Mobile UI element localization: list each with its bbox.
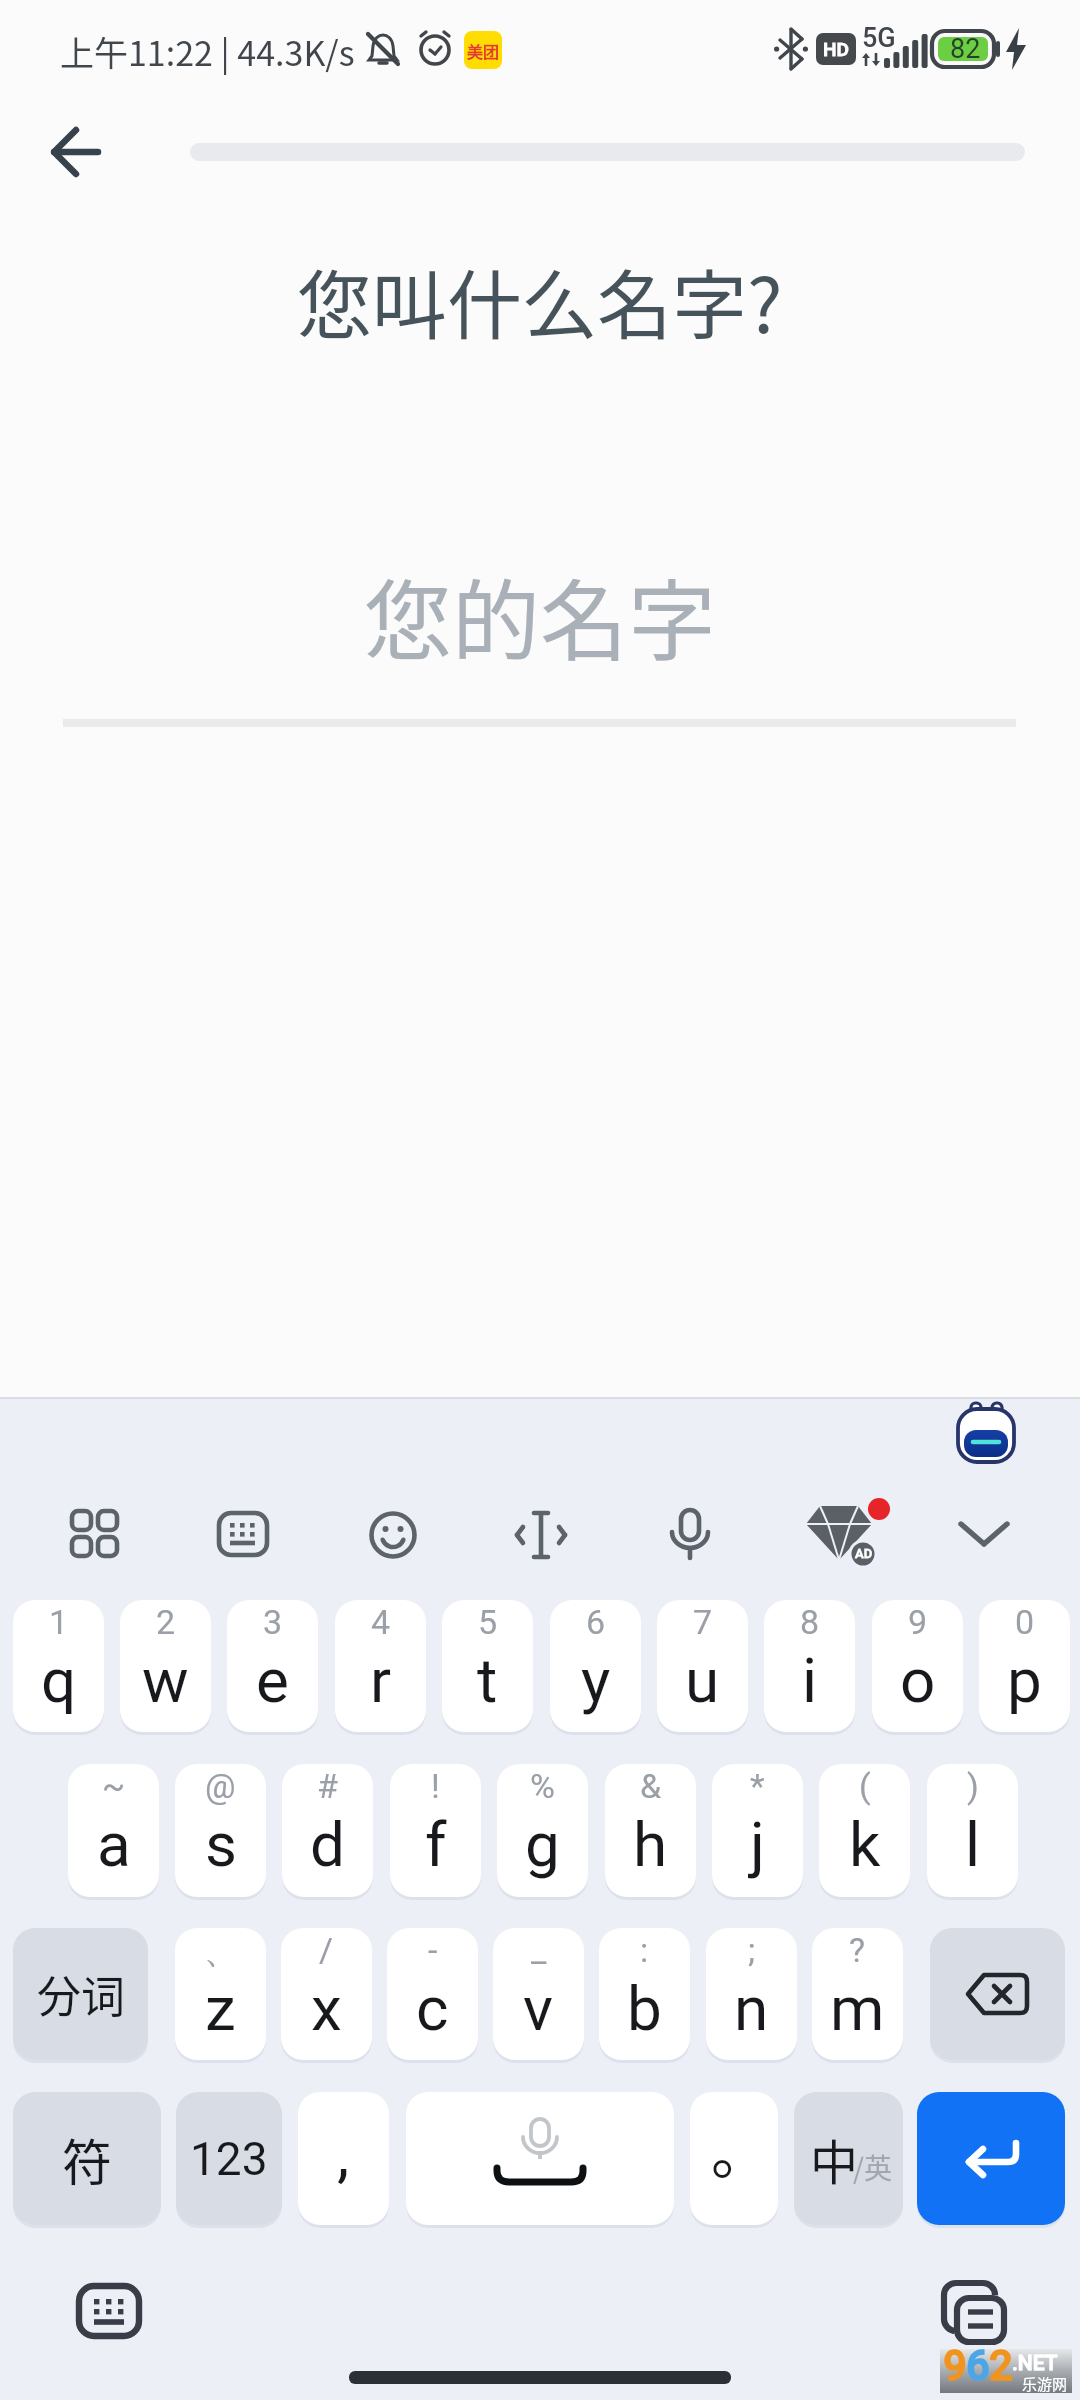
staticText: 2 [989,2341,1013,2385]
button[interactable]: 8 [764,1600,855,1732]
staticText: 9 [943,2341,967,2385]
button[interactable]: _ [493,1928,584,2060]
staticText: 。 [711,2107,770,2191]
button[interactable]: 5 [442,1600,533,1732]
button[interactable]: ; [706,1928,797,2060]
staticText: 2 [156,1602,176,1642]
button[interactable] [955,1401,1017,1463]
staticText: b [627,1972,662,2045]
staticText: m [830,1972,885,2045]
staticText: /英 [853,2147,892,2188]
staticText: 分词 [37,1962,125,2026]
button[interactable]: 。 [690,2092,778,2225]
button[interactable]: / [281,1928,372,2060]
staticText: / [319,1930,334,1970]
button[interactable]: @ [175,1764,266,1897]
staticText: 上午11:22 | 44.3K/s [60,27,355,76]
staticText: l [965,1808,981,1881]
button[interactable]: 6 [550,1600,641,1732]
button[interactable]: 4 [335,1600,426,1732]
button[interactable]: 中 [794,2092,903,2225]
staticText: 6 [966,2341,990,2385]
button[interactable] [77,2284,141,2338]
button[interactable] [941,2280,1007,2344]
button[interactable]: & [605,1764,696,1897]
button[interactable]: ! [390,1764,481,1897]
button[interactable]: 3 [227,1600,318,1732]
staticText: s [205,1808,237,1881]
button[interactable]: , [298,2092,389,2225]
staticText: HD [823,38,849,60]
button[interactable] [958,1518,1010,1550]
staticText: 乐游网 [1022,2373,1068,2395]
button[interactable]: : [599,1928,690,2060]
button[interactable]: ) [927,1764,1018,1897]
staticText: 您叫什么名字? [297,246,783,355]
staticText: 5 [478,1602,498,1642]
button[interactable] [917,2092,1065,2225]
staticText: 您的名字 [364,551,717,678]
staticText: v [523,1972,554,2045]
staticText: g [525,1808,560,1881]
staticText: z [205,1972,236,2045]
button[interactable] [71,1508,119,1560]
staticText: o [900,1644,936,1717]
staticText: y [581,1644,611,1717]
button[interactable] [668,1508,712,1564]
button[interactable] [217,1511,269,1557]
staticText: 123 [190,2132,268,2186]
button[interactable]: 1 [13,1600,104,1732]
staticText: c [416,1972,449,2045]
button[interactable]: % [497,1764,588,1897]
button[interactable]: ( [819,1764,910,1897]
staticText: 5G [862,22,896,54]
staticText: 8 [800,1602,820,1642]
staticText: 0 [1015,1602,1035,1642]
button[interactable]: 、 [175,1928,266,2060]
button[interactable] [515,1510,567,1560]
staticText: # [317,1766,338,1806]
staticText: u [685,1644,720,1717]
staticText: t [477,1644,498,1717]
staticText: 中 [810,2124,859,2194]
staticText: 6 [586,1602,606,1642]
button[interactable]: - [387,1928,478,2060]
button[interactable] [406,2092,674,2225]
staticText: ) [967,1766,979,1806]
button[interactable]: * [712,1764,803,1897]
staticText: k [849,1808,881,1881]
staticText: ? [849,1930,866,1970]
staticText: ( [859,1766,871,1806]
staticText: @ [205,1766,236,1806]
staticText: * [750,1766,765,1806]
button[interactable]: 9 [872,1600,963,1732]
button[interactable] [369,1511,417,1559]
button[interactable]: ? [812,1928,903,2060]
button[interactable]: 分词 [13,1928,148,2060]
button[interactable]: # [282,1764,373,1897]
button[interactable]: 0 [979,1600,1070,1732]
staticText: w [142,1644,189,1717]
button[interactable] [52,128,100,176]
staticText: x [311,1972,342,2045]
staticText: % [530,1766,555,1806]
staticText: 、 [204,1930,238,1973]
staticText: 82 [950,33,981,65]
button[interactable]: 符 [13,2092,161,2225]
button[interactable]: 2 [120,1600,211,1732]
staticText: - [428,1930,438,1970]
button[interactable]: 123 [176,2092,282,2225]
staticText: AD [855,1546,873,1561]
button[interactable] [930,1928,1065,2060]
staticText: ; [748,1930,756,1970]
button[interactable]: 7 [657,1600,748,1732]
staticText: 符 [62,2123,112,2195]
staticText: 7 [693,1602,713,1642]
staticText: q [41,1644,77,1717]
staticText: h [633,1808,668,1881]
staticText: r [370,1644,392,1717]
button[interactable] [806,1498,890,1572]
staticText: 9 [908,1602,928,1642]
button[interactable]: ~ [68,1764,159,1897]
staticText: a [97,1808,131,1881]
